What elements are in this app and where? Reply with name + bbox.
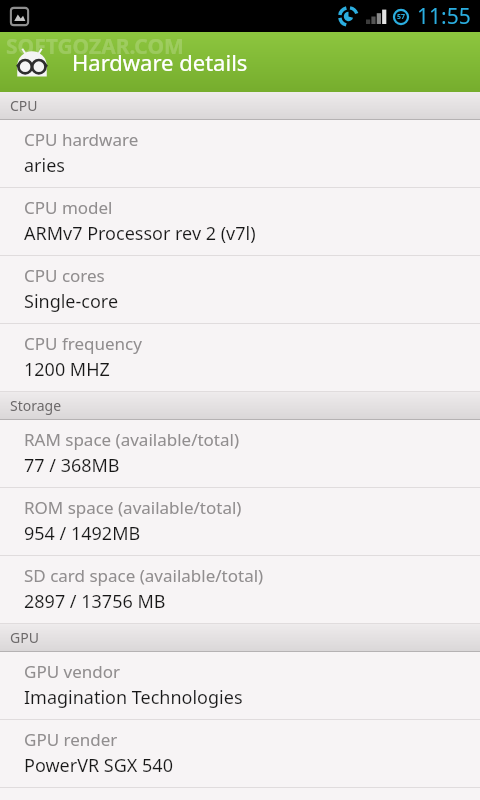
staticText: 77 / 368MB — [24, 453, 120, 478]
staticText: ROM space (available/total) — [24, 496, 242, 519]
staticText: Storage — [10, 396, 62, 415]
staticText: 57 — [397, 12, 406, 22]
staticText: Imagination Technologies — [24, 685, 243, 710]
button[interactable]: SD card space (available/total) — [0, 556, 480, 623]
staticText: Single-core — [24, 289, 119, 314]
other: Screenshot captured — [9, 6, 30, 27]
staticText: RAM space (available/total) — [24, 428, 240, 451]
button[interactable]: CPU cores — [0, 256, 480, 323]
staticText: 954 / 1492MB — [24, 521, 141, 546]
staticText: ARMv7 Processor rev 2 (v7l) — [24, 221, 256, 246]
button[interactable]: CPU model — [0, 188, 480, 255]
button[interactable]: GPU render — [0, 720, 480, 787]
staticText: 1200 MHZ — [24, 357, 110, 382]
button[interactable]: CPU frequency — [0, 324, 480, 391]
staticText: PowerVR SGX 540 — [24, 753, 173, 778]
staticText: SD card space (available/total) — [24, 564, 264, 587]
staticText: SOFTGOZAR.COM — [6, 32, 184, 61]
other: App icon — [14, 44, 50, 80]
button[interactable]: ROM space (available/total) — [0, 488, 480, 555]
staticText: CPU cores — [24, 264, 105, 287]
staticText: GPU render — [24, 728, 118, 751]
staticText: 2897 / 13756 MB — [24, 589, 166, 614]
button[interactable]: CPU hardware — [0, 120, 480, 187]
staticText: Hardware details — [72, 47, 248, 77]
staticText: aries — [24, 153, 65, 178]
staticText: GPU vendor — [24, 660, 120, 683]
staticText: CPU — [10, 96, 38, 115]
button[interactable]: GPU vendor — [0, 652, 480, 719]
staticText: 11:55 — [417, 2, 471, 31]
staticText: CPU hardware — [24, 128, 139, 151]
staticText: CPU frequency — [24, 332, 142, 355]
staticText: GPU — [10, 628, 39, 647]
staticText: CPU model — [24, 196, 113, 219]
button[interactable]: RAM space (available/total) — [0, 420, 480, 487]
